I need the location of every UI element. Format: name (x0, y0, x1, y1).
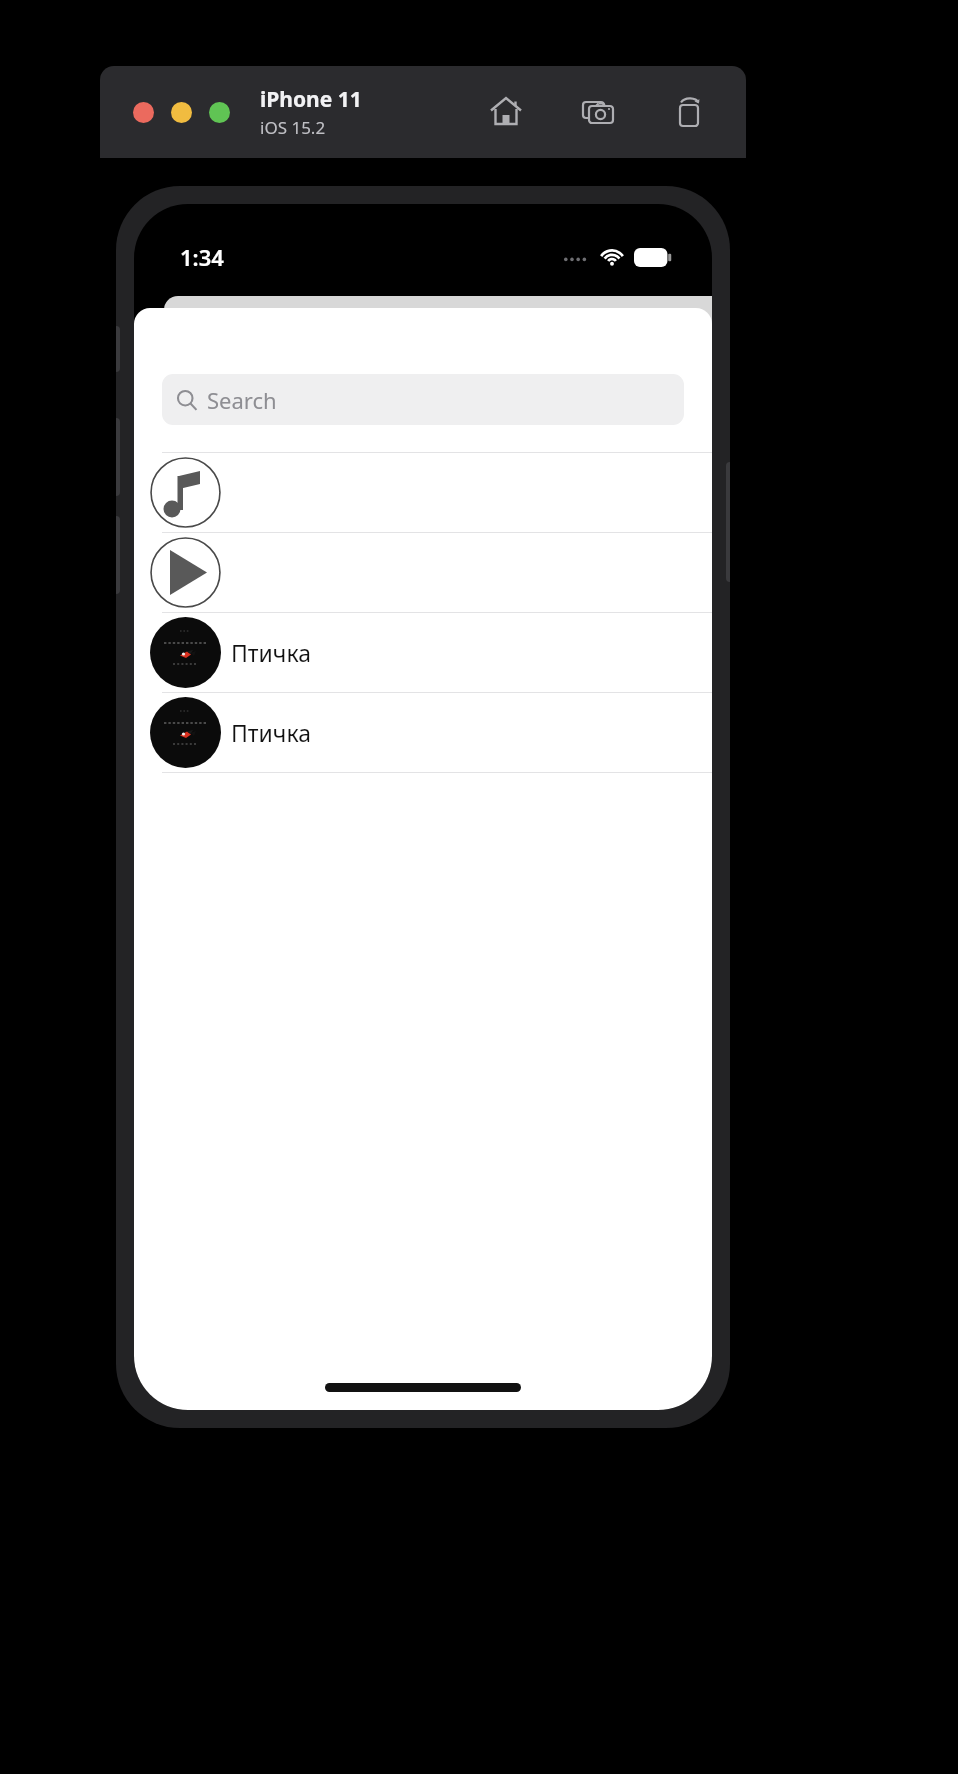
button[interactable]: Rotate (668, 90, 712, 134)
button[interactable]: Птичка (134, 693, 712, 772)
button[interactable]: Screenshot (576, 90, 620, 134)
button[interactable]: Home (484, 90, 528, 134)
button[interactable]: Minimise (171, 102, 192, 123)
staticText: iPhone 11 (260, 85, 362, 114)
button[interactable] (134, 533, 712, 612)
button[interactable]: Zoom (209, 102, 230, 123)
staticText: Птичка (231, 717, 311, 748)
button[interactable]: Птичка (134, 613, 712, 692)
button[interactable]: Search (162, 374, 684, 425)
staticText: Птичка (231, 637, 311, 668)
staticText: iOS 15.2 (260, 116, 326, 139)
staticText: Search (207, 385, 277, 415)
button[interactable]: Close (133, 102, 154, 123)
staticText: 1:34 (180, 242, 224, 272)
button[interactable] (134, 453, 712, 532)
